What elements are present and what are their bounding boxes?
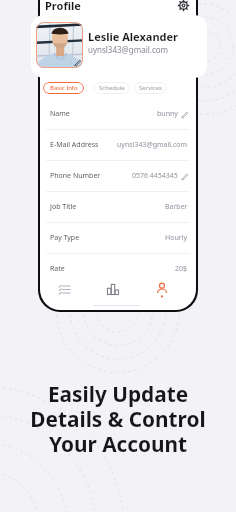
staticText: Services — [139, 84, 162, 92]
button[interactable]: Edit photo — [73, 58, 81, 66]
staticText: Name — [50, 109, 70, 119]
staticText: Easily Update Details & Control Your Acc… — [0, 380, 236, 458]
button[interactable]: Edit photo — [31, 15, 207, 78]
staticText: Pay Type — [50, 233, 80, 243]
button[interactable]: Statistics — [88, 279, 137, 299]
staticText: Basic Info — [50, 84, 78, 92]
staticText: Rate — [50, 264, 65, 274]
staticText: Schedule — [99, 84, 125, 92]
button[interactable]: Pay Type — [40, 223, 196, 253]
staticText: 20$ — [175, 264, 188, 274]
button[interactable]: Services — [134, 82, 167, 94]
button[interactable]: Profile — [137, 279, 186, 299]
button[interactable]: Name — [40, 99, 196, 129]
staticText: Barber — [165, 202, 188, 212]
staticText: E-Mail Address — [50, 140, 99, 150]
button[interactable]: Rate — [40, 254, 196, 284]
staticText: uynsl343@gmail.com — [117, 140, 188, 150]
staticText: Hourly — [165, 233, 188, 243]
button[interactable]: E-Mail Address — [40, 130, 196, 160]
staticText: Job Title — [50, 202, 77, 212]
button[interactable]: Schedule — [93, 82, 130, 94]
button[interactable]: Phone Number — [40, 161, 196, 191]
staticText: Leslie Alexander — [88, 29, 179, 44]
staticText: uynsl343@gmail.com — [88, 44, 169, 55]
staticText: Profile — [45, 0, 81, 13]
button[interactable]: Basic Info — [43, 82, 84, 94]
button[interactable]: Tasks — [40, 279, 88, 299]
button[interactable]: Settings — [175, 0, 191, 13]
button[interactable]: Job Title — [40, 192, 196, 222]
staticText: 0576 4454345 — [132, 171, 178, 181]
staticText: Phone Number — [50, 171, 101, 181]
staticText: bunny — [157, 109, 178, 119]
